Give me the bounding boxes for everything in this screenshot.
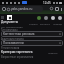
- staticText: Аудитория показа: [1, 37, 24, 41]
- staticText: Тип рекламы: [1, 28, 18, 32]
- button[interactable]: Info: [58, 16, 62, 20]
- staticText: Показать: [48, 52, 58, 55]
- staticText: Пользователи: [3, 41, 24, 45]
- button[interactable]: Контекстная реклама: [1, 31, 63, 37]
- button[interactable]: yabs.yandex.ru: [6, 6, 43, 12]
- staticText: 12:45: [43, 1, 51, 5]
- staticText: Документы: [1, 20, 19, 24]
- button[interactable]: Reload: [49, 6, 54, 11]
- button[interactable]: More options: [59, 7, 63, 11]
- button[interactable]: Social: [37, 16, 41, 20]
- staticText: Контакты: [40, 23, 51, 26]
- button[interactable]: Site information: [1, 6, 6, 11]
- button[interactable]: Contacts: [44, 16, 48, 20]
- staticText: Соцсети: [29, 23, 38, 26]
- staticText: Регион показа: [1, 46, 20, 50]
- staticText: yabs.yandex.ru: [11, 7, 33, 11]
- staticText: Помощь: [53, 23, 63, 26]
- button[interactable]: Support: [51, 16, 55, 20]
- button[interactable]: Пользователи: [1, 40, 63, 46]
- button[interactable]: Tabs: [54, 6, 59, 11]
- staticText: Контекстная реклама: [3, 32, 35, 36]
- staticText: Критерии таргетинга: [1, 50, 33, 54]
- staticText: Тех. документация: [1, 25, 23, 28]
- staticText: Возрастные ограничения: [1, 55, 34, 59]
- staticText: 8: [56, 8, 58, 11]
- button[interactable]: Site logo: [7, 15, 12, 20]
